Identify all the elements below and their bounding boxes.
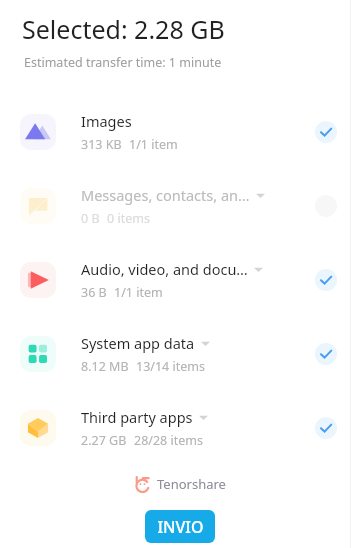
- staticText: Audio, video, and docu…: [81, 259, 248, 279]
- staticText: Third party apps: [81, 407, 193, 427]
- button[interactable]: Not selected: [315, 195, 337, 217]
- staticText: 1/1 item: [114, 284, 163, 301]
- staticText: Messages, contacts, an…: [81, 185, 250, 205]
- staticText: Images: [81, 111, 132, 131]
- staticText: 313 KB: [81, 136, 122, 153]
- button[interactable]: Messages, contacts, an…: [0, 169, 359, 243]
- staticText: Tenorshare: [157, 475, 226, 493]
- button[interactable]: Third party apps: [0, 391, 359, 465]
- button[interactable]: Selected: [315, 269, 337, 291]
- button[interactable]: System app data: [0, 317, 359, 391]
- staticText: 28/28 items: [134, 432, 203, 449]
- staticText: 36 B: [81, 284, 107, 301]
- staticText: 2.27 GB: [81, 432, 127, 449]
- staticText: 13/14 items: [136, 358, 205, 375]
- button[interactable]: Audio, video, and docu…: [0, 243, 359, 317]
- button[interactable]: Images: [0, 95, 359, 169]
- button[interactable]: Selected: [315, 343, 337, 365]
- staticText: 0 B: [81, 210, 100, 227]
- staticText: System app data: [81, 333, 195, 353]
- staticText: 1/1 item: [129, 136, 178, 153]
- staticText: Estimated transfer time: 1 minute: [24, 54, 222, 71]
- button[interactable]: Selected: [315, 417, 337, 439]
- button[interactable]: INVIO: [145, 510, 215, 543]
- staticText: INVIO: [157, 516, 204, 538]
- staticText: 0 items: [107, 210, 150, 227]
- staticText: 8.12 MB: [81, 358, 129, 375]
- staticText: Selected: 2.28 GB: [22, 12, 225, 46]
- button[interactable]: Selected: [315, 121, 337, 143]
